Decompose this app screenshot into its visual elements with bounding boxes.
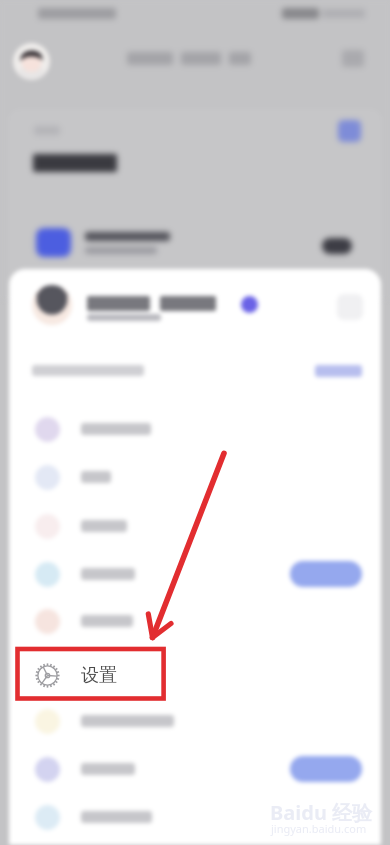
- button[interactable]: More options: [9, 269, 381, 341]
- button[interactable]: [9, 453, 381, 501]
- button[interactable]: [9, 745, 381, 793]
- staticText: 设置: [81, 664, 117, 687]
- button[interactable]: [9, 697, 381, 745]
- button[interactable]: [9, 793, 381, 841]
- button[interactable]: More options: [337, 294, 363, 320]
- button[interactable]: [315, 365, 362, 377]
- staticText: Baidu 经验: [270, 799, 373, 826]
- staticText: jingyan.baidu.com: [271, 821, 367, 836]
- button[interactable]: [9, 550, 381, 598]
- button[interactable]: 设置: [9, 651, 381, 699]
- button[interactable]: [9, 502, 381, 550]
- button[interactable]: [290, 561, 362, 587]
- button[interactable]: [9, 597, 381, 645]
- button[interactable]: [9, 405, 381, 453]
- button[interactable]: [290, 756, 362, 782]
